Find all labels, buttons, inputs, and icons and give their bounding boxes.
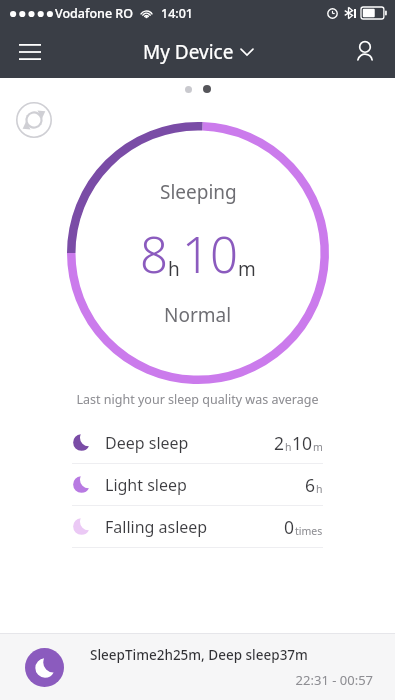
staticText: h <box>316 482 323 496</box>
staticText: m <box>313 440 323 454</box>
staticText: 8 <box>140 221 168 288</box>
button[interactable]: SleepTime2h25m, Deep sleep37m <box>0 634 395 700</box>
staticText: m <box>238 256 256 282</box>
button[interactable]: Deep sleep <box>72 422 323 463</box>
staticText: h <box>168 256 180 282</box>
staticText: 22:31 - 00:57 <box>90 671 373 689</box>
staticText: Normal <box>164 302 232 328</box>
staticText: Vodafone RO <box>55 5 134 22</box>
staticText: 0 <box>284 515 295 539</box>
button[interactable]: Menu <box>8 30 52 74</box>
staticText: SleepTime2h25m, Deep sleep37m <box>90 646 308 664</box>
button[interactable]: Falling asleep <box>72 506 323 547</box>
staticText: h <box>285 440 292 454</box>
staticText: 10 <box>292 431 313 455</box>
staticText: Sleeping <box>160 179 237 205</box>
button[interactable]: My Device <box>143 39 253 65</box>
staticText: Falling asleep <box>105 516 208 538</box>
staticText: My Device <box>143 39 234 65</box>
staticText: 10 <box>182 221 238 288</box>
button[interactable]: Refresh <box>16 102 52 138</box>
staticText: Light sleep <box>105 474 187 496</box>
button[interactable]: Light sleep <box>72 464 323 505</box>
staticText: 6 <box>305 473 316 497</box>
staticText: 2 <box>274 431 285 455</box>
staticText: 14:01 <box>161 5 194 22</box>
button[interactable]: Profile <box>343 30 387 74</box>
staticText: Deep sleep <box>105 432 189 454</box>
staticText: times <box>295 524 323 538</box>
staticText: Last night your sleep quality was averag… <box>0 391 395 408</box>
